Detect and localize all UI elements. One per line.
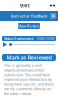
staticText: Instructor Feedback [11,13,47,19]
staticText: 0:00 / 0:00 [37,36,54,41]
staticText: Voice Comment [4,36,34,41]
staticText: This is generally a well-organized and p… [4,63,54,96]
staticText: 9:41 [20,2,30,9]
staticText: View Rubric [18,23,40,29]
button[interactable]: Close [50,13,56,19]
button[interactable]: Mark as Reviewed [2,54,56,61]
button[interactable]: Play [3,42,7,47]
button[interactable]: View Rubric [18,23,40,29]
staticText: Mark as Reviewed [6,54,51,61]
staticText: ✕ [51,13,55,19]
